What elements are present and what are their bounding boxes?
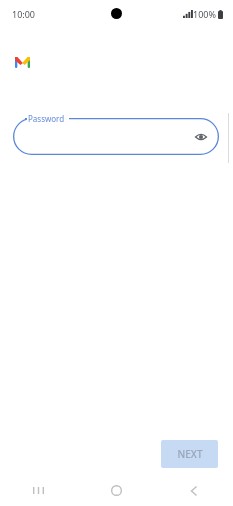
staticText: 100% (193, 8, 216, 20)
button[interactable]: Recents (0, 475, 77, 506)
button[interactable]: Home (77, 475, 155, 506)
staticText: NEXT (177, 447, 203, 461)
staticText: Password (28, 113, 65, 124)
button[interactable]: Back (155, 475, 233, 506)
button[interactable]: NEXT (161, 440, 218, 468)
button[interactable]: Show password (191, 127, 211, 147)
staticText: 10:00 (12, 8, 36, 20)
